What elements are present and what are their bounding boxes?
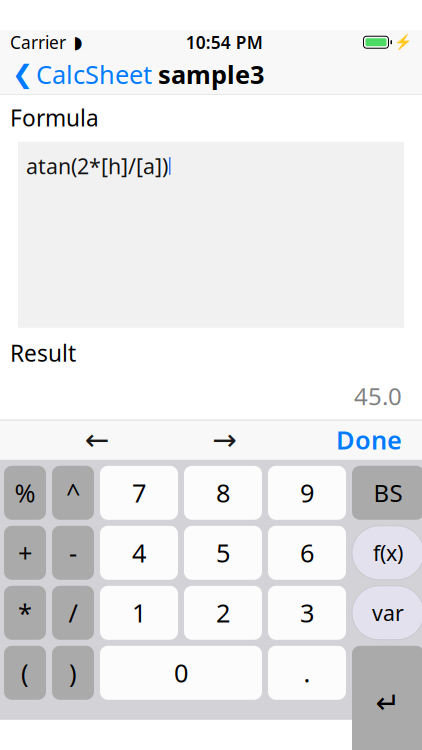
staticText: sample3	[158, 57, 264, 91]
button[interactable]: 5	[184, 526, 262, 580]
button[interactable]: var	[352, 586, 422, 640]
button[interactable]: Done	[322, 420, 416, 460]
staticText: Done	[336, 423, 402, 457]
staticText: /	[68, 596, 77, 630]
button[interactable]: ↵	[352, 646, 422, 750]
button[interactable]: 3	[268, 586, 346, 640]
staticText: +	[18, 536, 32, 570]
staticText: *	[18, 596, 32, 630]
staticText: 0	[174, 656, 188, 690]
staticText: 7	[132, 476, 146, 510]
staticText: %	[14, 476, 35, 510]
staticText: 10:54 PM	[186, 31, 263, 54]
button[interactable]: 4	[100, 526, 178, 580]
button[interactable]: 2	[184, 586, 262, 640]
button[interactable]: %	[4, 466, 46, 520]
staticText	[66, 31, 71, 54]
button[interactable]: 1	[100, 586, 178, 640]
button[interactable]: .	[268, 646, 346, 700]
staticText: .	[303, 656, 310, 690]
staticText: ⚡	[394, 34, 412, 51]
staticText: var	[372, 599, 404, 627]
button[interactable]: Move cursor left	[67, 420, 127, 460]
staticText: 2	[216, 596, 230, 630]
button[interactable]: /	[52, 586, 94, 640]
staticText: 6	[300, 536, 314, 570]
button[interactable]: )	[52, 646, 94, 700]
button[interactable]: 6	[268, 526, 346, 580]
button[interactable]: 9	[268, 466, 346, 520]
staticText: ◗	[73, 32, 82, 52]
button[interactable]: Move cursor right	[195, 420, 255, 460]
button[interactable]: f(x)	[352, 526, 422, 580]
staticText: ^	[66, 476, 80, 510]
button[interactable]: *	[4, 586, 46, 640]
staticText: ❮	[12, 60, 33, 89]
staticText: →	[212, 423, 237, 456]
staticText: Formula	[10, 103, 99, 133]
staticText: )	[69, 656, 77, 690]
staticText: Carrier	[10, 31, 66, 54]
staticText: 9	[300, 476, 314, 510]
staticText: CalcSheet	[36, 57, 152, 91]
staticText: ←	[85, 423, 110, 456]
staticText: 1	[132, 596, 146, 630]
staticText: ↵	[375, 686, 400, 719]
button[interactable]: 8	[184, 466, 262, 520]
staticText: BS	[373, 477, 402, 509]
staticText: 3	[300, 596, 314, 630]
button[interactable]: BS	[352, 466, 422, 520]
staticText: 4	[132, 536, 146, 570]
staticText: f(x)	[373, 539, 403, 567]
staticText: atan(2*[h]/[a])	[26, 152, 168, 180]
staticText: 45.0	[354, 380, 402, 412]
button[interactable]: ❮	[0, 51, 152, 97]
button[interactable]: +	[4, 526, 46, 580]
button[interactable]: -	[52, 526, 94, 580]
button[interactable]: 7	[100, 466, 178, 520]
staticText: 5	[216, 536, 230, 570]
staticText: (	[21, 656, 29, 690]
button[interactable]: 0	[100, 646, 262, 700]
button[interactable]: ^	[52, 466, 94, 520]
staticText: -	[69, 536, 77, 570]
button[interactable]: (	[4, 646, 46, 700]
staticText: Result	[10, 338, 76, 368]
staticText: 8	[216, 476, 230, 510]
